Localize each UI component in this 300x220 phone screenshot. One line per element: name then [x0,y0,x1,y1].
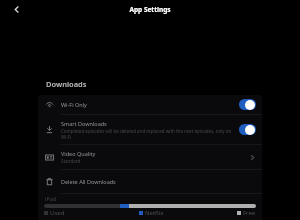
staticText: Completed episodes will be deleted and r… [61,128,235,140]
staticText: Video Quality [61,150,96,157]
button[interactable]: Back [6,0,26,20]
staticText: Smart Downloads [61,120,107,127]
button[interactable]: Delete All Downloads [38,170,262,193]
staticText: Downloads [46,79,87,89]
staticText: Standard [61,158,81,164]
staticText: Free [243,209,256,217]
staticText: Wi-Fi Only [61,101,87,108]
staticText: iPad [45,195,57,202]
button[interactable]: Smart Downloads [38,115,262,144]
staticText: Netflix [145,209,164,217]
button[interactable]: Video Quality [38,145,262,169]
staticText: App Settings [0,5,300,14]
staticText: Delete All Downloads [61,178,116,185]
button[interactable]: Wi-Fi Only [38,95,262,114]
staticText: Used [50,209,65,217]
